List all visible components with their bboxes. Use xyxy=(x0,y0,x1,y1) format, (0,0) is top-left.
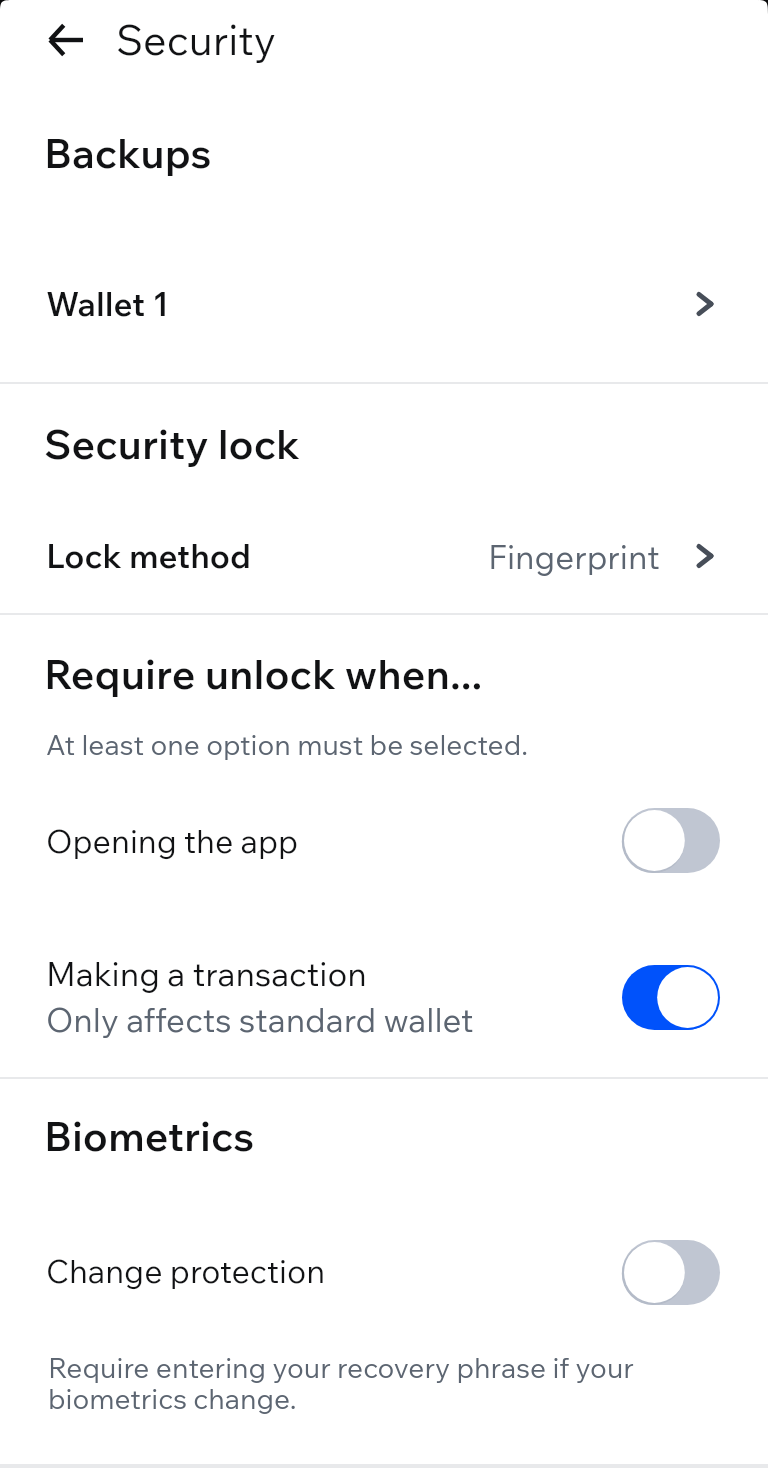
staticText: Require entering your recovery phrase if… xyxy=(48,1350,648,1416)
staticText: Security xyxy=(116,14,276,66)
button[interactable]: Change protection xyxy=(622,1240,720,1305)
button[interactable] xyxy=(0,514,768,578)
button[interactable] xyxy=(0,943,768,1053)
staticText: Change protection xyxy=(46,1251,326,1291)
staticText: Lock method xyxy=(46,535,252,577)
button[interactable]: Require unlock when making a transaction xyxy=(622,965,720,1030)
staticText: Wallet 1 xyxy=(46,283,169,325)
button[interactable] xyxy=(0,1240,768,1306)
button[interactable] xyxy=(0,262,768,326)
staticText: Only affects standard wallet xyxy=(46,999,474,1041)
staticText: Security lock xyxy=(44,418,300,470)
staticText: Fingerprint xyxy=(488,536,660,578)
button[interactable] xyxy=(0,808,768,874)
staticText: Making a transaction xyxy=(46,953,367,995)
button[interactable]: Back xyxy=(40,12,96,68)
button[interactable]: Require unlock when opening the app xyxy=(622,808,720,873)
staticText: Require unlock when... xyxy=(44,648,483,700)
staticText: Opening the app xyxy=(46,821,299,861)
staticText: At least one option must be selected. xyxy=(46,727,529,762)
staticText: Backups xyxy=(44,127,212,179)
staticText: Biometrics xyxy=(44,1110,255,1162)
